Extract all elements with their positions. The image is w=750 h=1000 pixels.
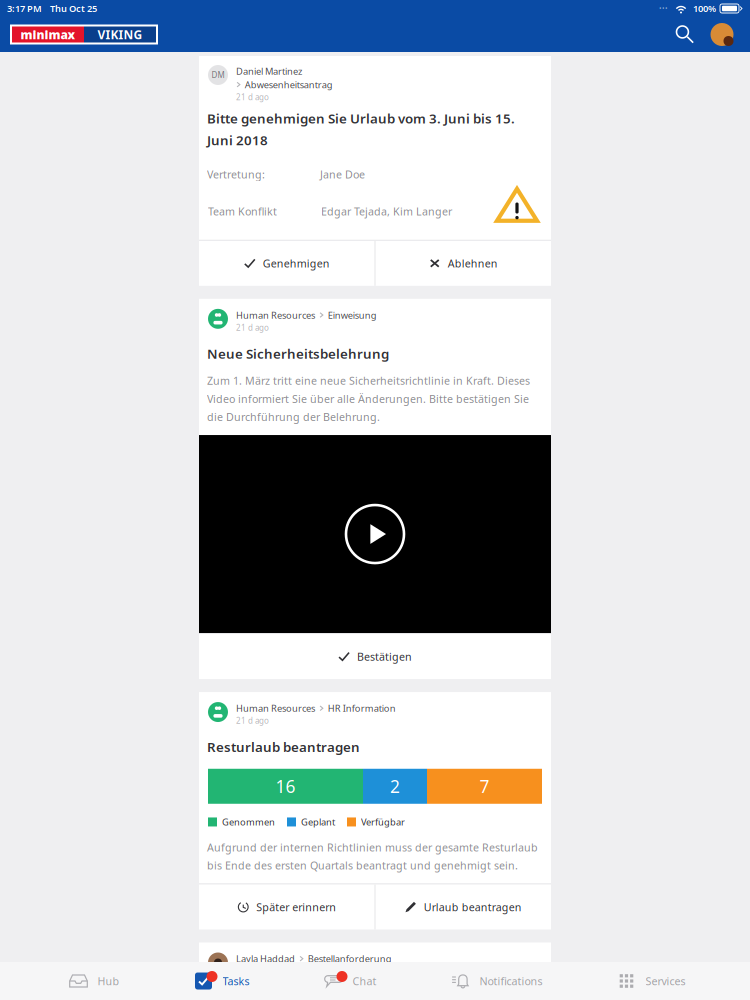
staticText: 16: [275, 775, 295, 798]
button[interactable]: Später erinnern: [199, 884, 374, 929]
button[interactable]: Notifications: [446, 962, 542, 1000]
staticText: Ablehnen: [448, 256, 498, 270]
staticText: Hub: [97, 974, 119, 988]
staticText: Notifications: [479, 974, 542, 988]
staticText: Edgar Tejada, Kim Langer: [321, 204, 452, 218]
button[interactable]: Bestätigen: [199, 634, 551, 679]
staticText: 7: [479, 775, 489, 798]
staticText: Später erinnern: [256, 900, 336, 914]
staticText: 2: [390, 775, 400, 798]
staticText: Tasks: [222, 974, 249, 988]
staticText: DM: [211, 70, 224, 80]
staticText: Human Resources: [236, 702, 315, 714]
staticText: Bestellanforderung: [308, 952, 392, 965]
button[interactable]: Genehmigen: [199, 241, 374, 286]
staticText: Services: [645, 974, 685, 988]
staticText: Genehmigen: [263, 256, 330, 270]
staticText: Bitte genehmigen Sie Urlaub vom 3. Juni …: [207, 109, 515, 149]
button[interactable]: Services: [612, 962, 685, 1000]
staticText: VIKING: [97, 26, 142, 42]
staticText: Neue Sicherheitsbelehrung: [207, 345, 389, 362]
staticText: Urlaub beantragen: [424, 900, 522, 914]
button[interactable]: Search: [670, 20, 700, 48]
staticText: Team Konflikt: [208, 204, 277, 218]
staticText: 100%: [693, 2, 716, 15]
staticText: 3:17 PM: [7, 2, 42, 15]
staticText: minimax: [20, 26, 75, 42]
staticText: Thu Oct 25: [50, 2, 97, 15]
staticText: Geplant: [301, 816, 335, 828]
staticText: Layla Haddad: [236, 952, 295, 965]
staticText: Einweisung: [328, 309, 377, 321]
staticText: Resturlaub beantragen: [207, 738, 360, 756]
staticText: •••: [659, 4, 668, 13]
button[interactable]: Tasks: [189, 962, 249, 1000]
button[interactable]: Hub: [64, 962, 119, 1000]
staticText: Human Resources: [236, 309, 315, 321]
staticText: 21 d ago: [236, 92, 269, 102]
button[interactable]: Home: [10, 24, 158, 44]
staticText: Abwesenheitsantrag: [245, 78, 333, 91]
staticText: HR Information: [328, 702, 396, 714]
staticText: Zum 1. März tritt eine neue Sicherheitsr…: [207, 373, 530, 424]
button[interactable]: Chat: [319, 962, 376, 1000]
staticText: Jane Doe: [320, 167, 365, 181]
staticText: Vertretung:: [207, 167, 265, 181]
button[interactable]: Profile: [708, 20, 736, 48]
staticText: Genommen: [222, 816, 275, 828]
staticText: 21 d ago: [236, 322, 269, 333]
button[interactable]: Ablehnen: [375, 241, 551, 286]
button[interactable]: Urlaub beantragen: [375, 884, 551, 929]
button[interactable]: Play video: [199, 435, 551, 633]
staticText: Verfügbar: [361, 816, 405, 828]
staticText: Bestätigen: [357, 649, 412, 664]
staticText: 21 d ago: [236, 715, 269, 726]
staticText: Aufgrund der internen Richtlinien muss d…: [207, 840, 538, 872]
staticText: Chat: [352, 974, 376, 988]
staticText: Daniel Martinez: [236, 65, 302, 77]
